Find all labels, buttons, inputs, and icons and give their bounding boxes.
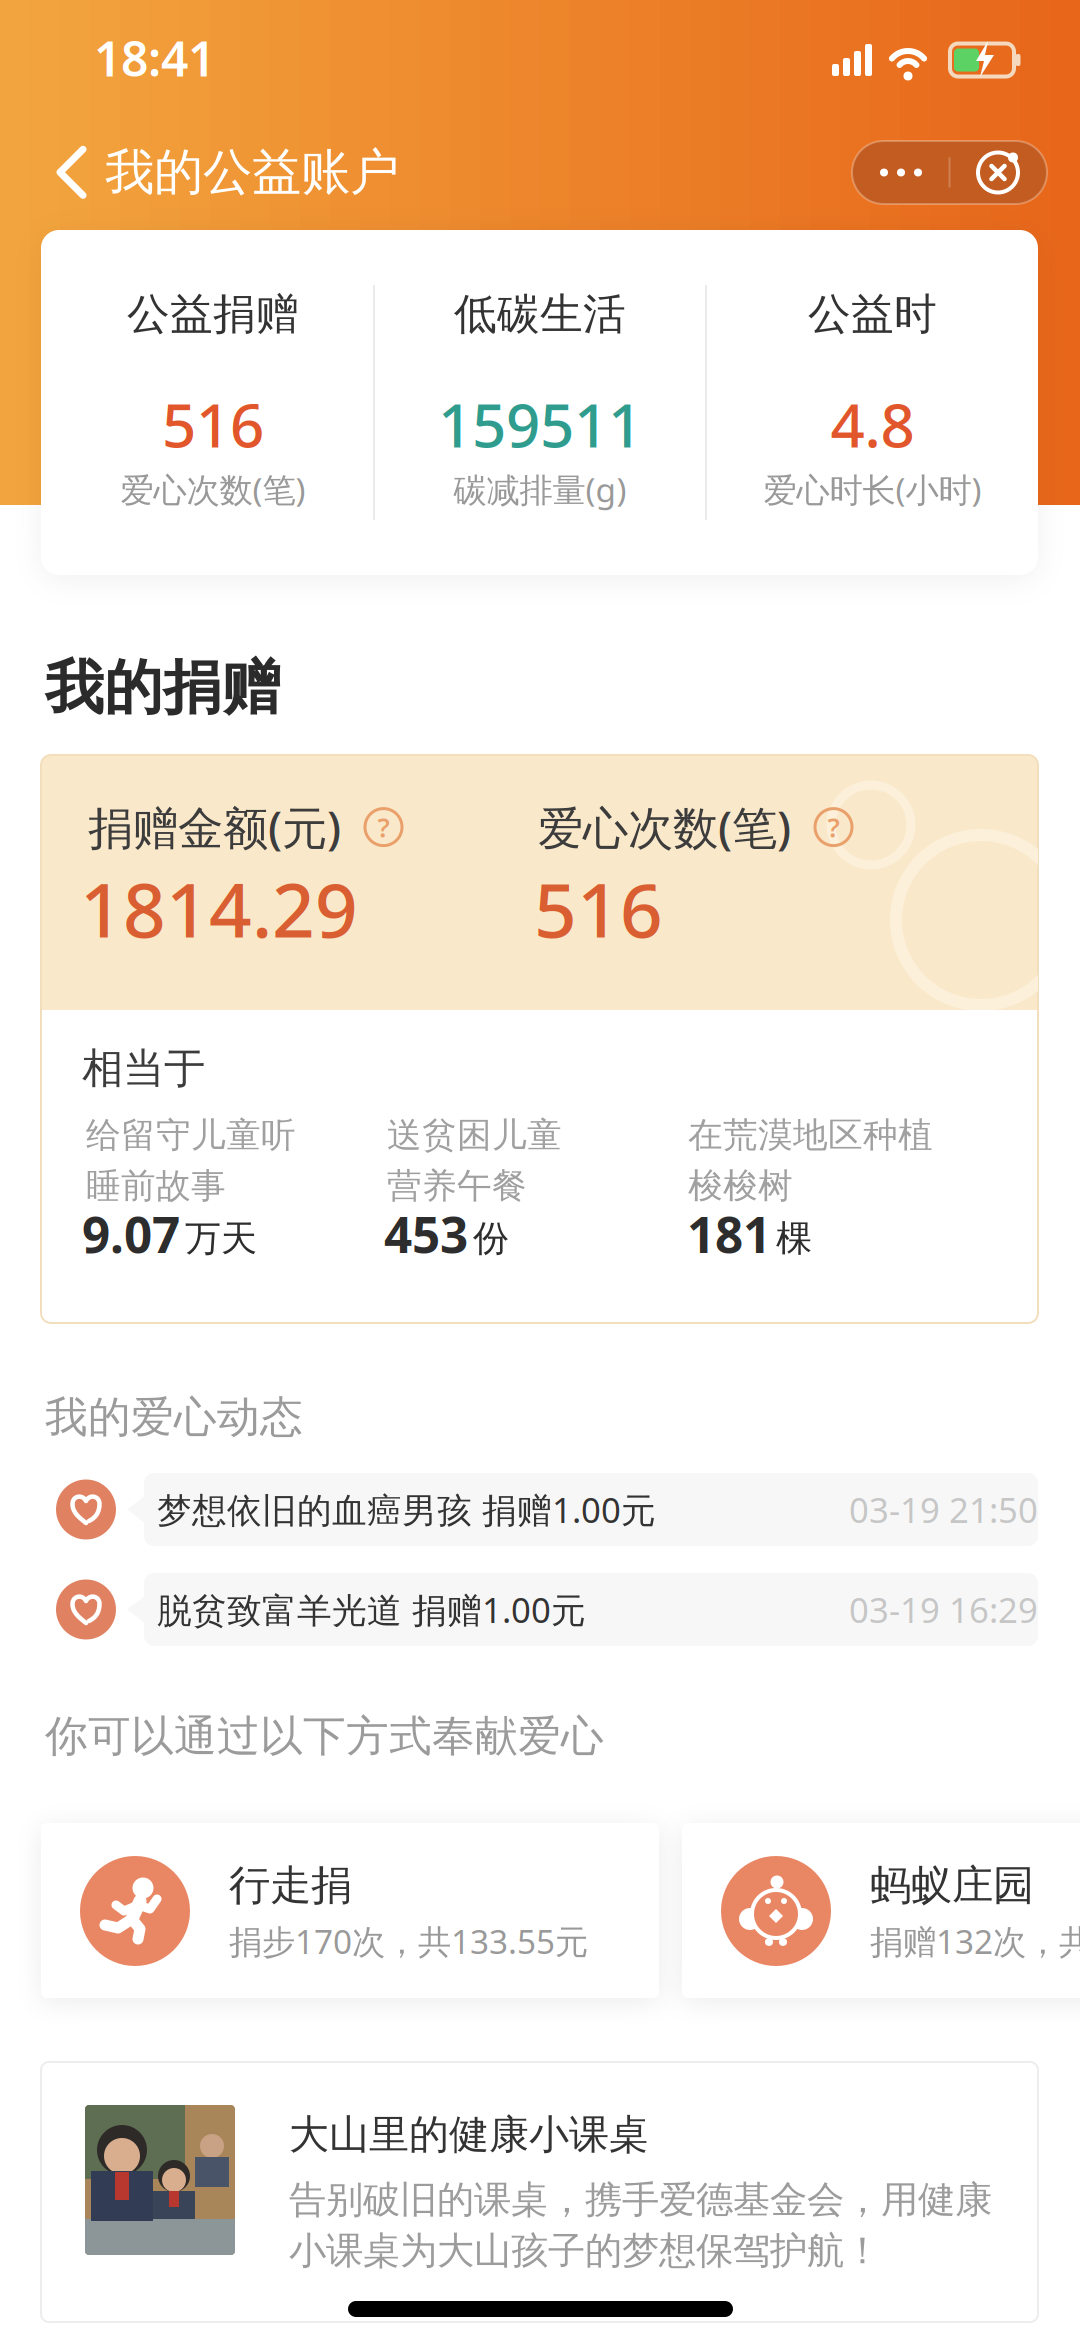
staticText: 159511 [438, 384, 642, 464]
staticText: 1814.29 [80, 859, 358, 958]
button[interactable]: 公益时 [707, 230, 1038, 511]
staticText: 低碳生活 [454, 288, 626, 340]
staticText: 脱贫致富羊光道 捐赠1.00元 [157, 1586, 586, 1632]
staticText: 你可以通过以下方式奉献爱心 [45, 1710, 604, 1762]
button[interactable]: Back [0, 0, 399, 203]
button[interactable]: 公益捐赠 [47, 230, 379, 511]
staticText: 大山里的健康小课桌 [289, 2110, 649, 2159]
staticText: 梦想依旧的血癌男孩 捐赠1.00元 [157, 1486, 656, 1532]
staticText: 小课桌为大山孩子的梦想保驾护航！ [289, 2228, 881, 2274]
staticText: 捐赠金额(元) [88, 797, 341, 857]
staticText: 我的公益账户 [105, 142, 399, 203]
staticText: 爱心次数(笔) [538, 797, 791, 857]
button[interactable]: Help [365, 809, 402, 846]
staticText: 我的捐赠 [45, 652, 281, 724]
staticText: 516 [162, 384, 264, 464]
button[interactable]: 低碳生活 [375, 230, 705, 511]
staticText: 捐赠132次，共105.18元 [870, 1919, 1080, 1963]
staticText: 营养午餐 [387, 1165, 527, 1207]
staticText: 万天 [185, 1216, 257, 1260]
staticText: 我的爱心动态 [45, 1391, 303, 1443]
staticText: 18:41 [94, 26, 215, 90]
staticText: 爱心时长(小时) [763, 467, 981, 511]
staticText: ? [827, 809, 839, 845]
staticText: 蚂蚁庄园 [870, 1860, 1034, 1911]
staticText: 睡前故事 [86, 1165, 226, 1207]
staticText: 棵 [776, 1216, 812, 1260]
staticText: 爱心次数(笔) [120, 467, 305, 511]
staticText: 捐步170次，共133.55元 [229, 1919, 588, 1963]
button[interactable]: 大山里的健康小课桌 [41, 2062, 1038, 2322]
button[interactable]: 脱贫致富羊光道 捐赠1.00元 [56, 1573, 1038, 1646]
staticText: 9.07 [82, 1201, 180, 1266]
button[interactable]: Close [949, 141, 1046, 204]
staticText: ? [377, 809, 389, 845]
staticText: 份 [473, 1216, 509, 1260]
staticText: 相当于 [82, 1043, 205, 1094]
staticText: 公益时 [808, 288, 937, 340]
staticText: 453 [384, 1201, 468, 1266]
button[interactable]: 行走捐 [41, 1823, 659, 1998]
staticText: 碳减排量(g) [453, 467, 626, 511]
staticText: 给留守儿童听 [86, 1114, 296, 1157]
staticText: 告别破旧的课桌，携手爱德基金会，用健康 [289, 2177, 992, 2223]
button[interactable]: Help [815, 809, 852, 846]
staticText: 516 [534, 859, 663, 958]
button[interactable]: 蚂蚁庄园 [682, 1823, 1080, 1998]
staticText: 03-19 21:50 [849, 1486, 1038, 1532]
button[interactable]: 梦想依旧的血癌男孩 捐赠1.00元 [56, 1473, 1038, 1546]
staticText: 送贫困儿童 [387, 1114, 562, 1157]
button[interactable]: More [852, 141, 949, 204]
staticText: 181 [687, 1201, 771, 1266]
staticText: 在荒漠地区种植 [688, 1114, 933, 1157]
staticText: 4.8 [830, 384, 914, 464]
staticText: 梭梭树 [688, 1165, 793, 1207]
staticText: 行走捐 [229, 1860, 352, 1911]
staticText: 03-19 16:29 [849, 1586, 1038, 1632]
staticText: 公益捐赠 [127, 288, 299, 340]
